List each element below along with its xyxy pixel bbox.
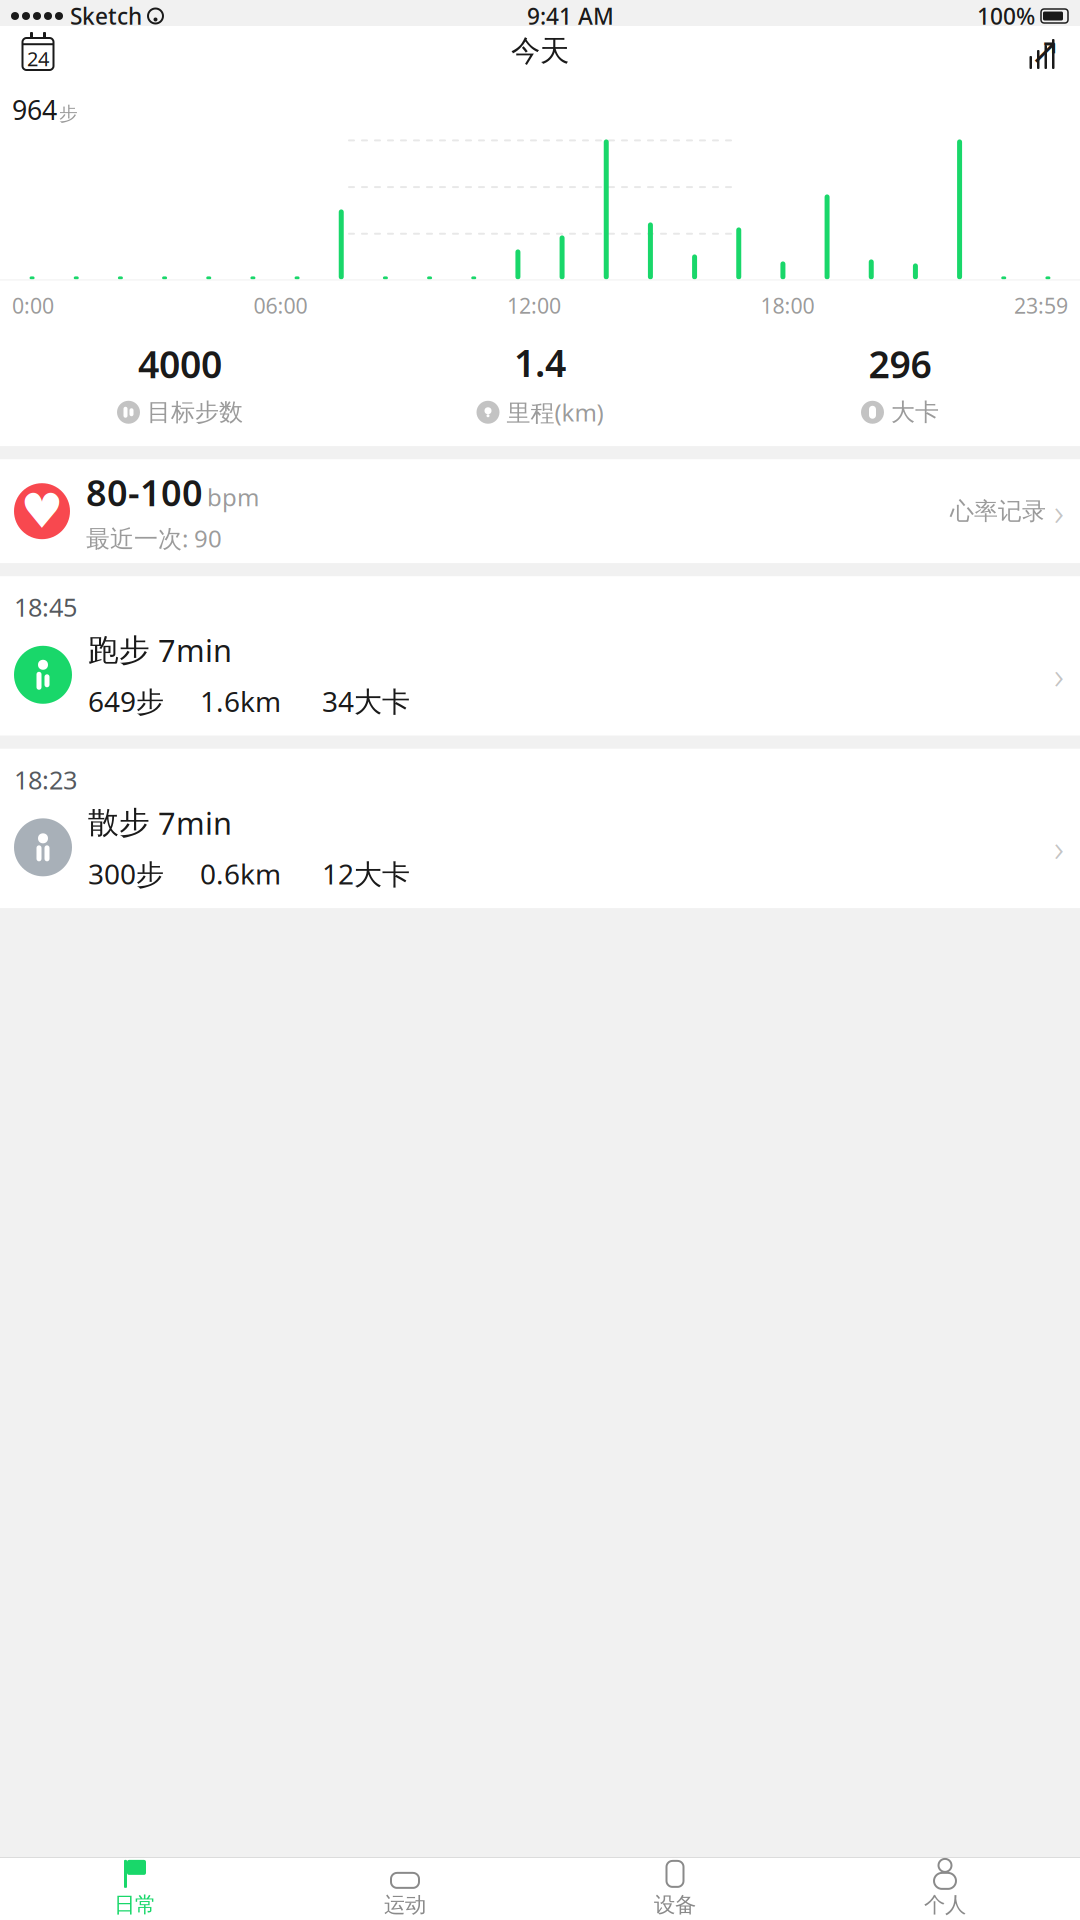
staticText: 23:59: [1014, 291, 1068, 320]
staticText: 12大卡: [322, 855, 410, 892]
staticText: ♥: [20, 484, 63, 538]
staticText: 18:00: [760, 291, 814, 320]
button[interactable]: 运动: [270, 1858, 540, 1920]
staticText: 心率记录: [950, 496, 1046, 526]
staticText: 日常: [114, 1892, 156, 1918]
button[interactable]: 18:23: [0, 749, 1080, 908]
staticText: ›: [1054, 822, 1064, 872]
button[interactable]: Statistics: [1016, 28, 1068, 74]
staticText: 1.6km: [200, 683, 281, 720]
staticText: 设备: [654, 1892, 696, 1918]
staticText: 目标步数: [147, 397, 243, 427]
staticText: 649步: [88, 683, 164, 720]
staticText: 1.4: [514, 338, 566, 387]
staticText: 18:45: [14, 590, 77, 624]
staticText: 100%: [977, 1, 1035, 31]
staticText: Sketch: [70, 1, 142, 31]
staticText: 300步: [88, 855, 164, 892]
button[interactable]: Calendar: [12, 28, 64, 74]
staticText: 296: [868, 339, 931, 388]
button[interactable]: ♥: [0, 459, 1080, 563]
staticText: ›: [1054, 486, 1064, 536]
staticText: 今天: [511, 33, 569, 69]
staticText: 跑步: [88, 631, 150, 669]
staticText: 12:00: [507, 291, 561, 320]
staticText: 24: [27, 45, 49, 72]
staticText: 34大卡: [322, 683, 410, 720]
staticText: 大卡: [891, 397, 939, 427]
staticText: 06:00: [253, 291, 307, 320]
button[interactable]: 296: [720, 339, 1080, 427]
staticText: 964: [12, 92, 57, 127]
staticText: 步: [59, 102, 78, 125]
button[interactable]: 个人: [810, 1858, 1080, 1920]
button[interactable]: 18:45: [0, 576, 1080, 736]
staticText: 个人: [924, 1892, 966, 1918]
button[interactable]: 4000: [0, 339, 360, 427]
staticText: 0.6km: [200, 855, 281, 892]
staticText: 最近一次: 90: [86, 522, 222, 554]
staticText: ↗: [1030, 31, 1060, 71]
button[interactable]: 日常: [0, 1858, 270, 1920]
staticText: 7min: [158, 630, 232, 670]
staticText: 0:00: [12, 291, 54, 320]
staticText: 7min: [158, 802, 232, 843]
staticText: 80-100: [86, 468, 203, 516]
staticText: 里程(km): [506, 396, 603, 428]
staticText: bpm: [207, 481, 259, 513]
staticText: 4000: [138, 339, 222, 388]
staticText: 9:41 AM: [527, 1, 614, 31]
button[interactable]: 1.4: [360, 338, 720, 428]
button[interactable]: 设备: [540, 1858, 810, 1920]
staticText: ›: [1054, 650, 1064, 700]
staticText: 18:23: [14, 763, 77, 796]
staticText: 运动: [384, 1892, 426, 1918]
staticText: 散步: [88, 804, 150, 842]
